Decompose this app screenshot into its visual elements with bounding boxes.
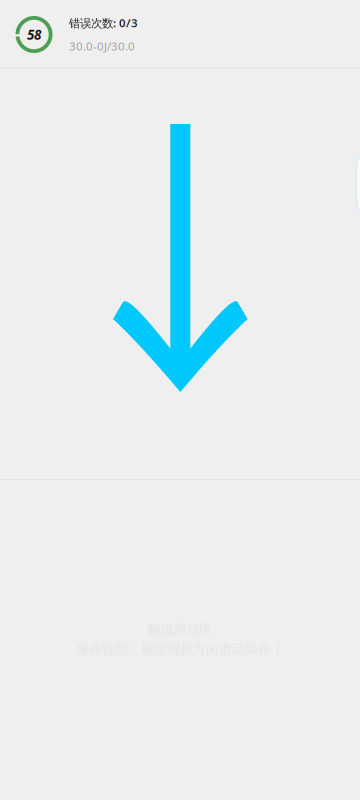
staticText: 错误次数: 0/3 [69, 15, 138, 30]
staticText: 触摸滑动区 [147, 621, 212, 638]
staticText: 操作说明：根据视标方向滑动操作！ [76, 641, 284, 658]
staticText: 30.0-0J/30.0 [69, 38, 135, 54]
button[interactable]: 显示结果面板 [356, 152, 360, 215]
button[interactable]: 58 [0, 0, 360, 69]
staticText: 58 [27, 26, 41, 43]
